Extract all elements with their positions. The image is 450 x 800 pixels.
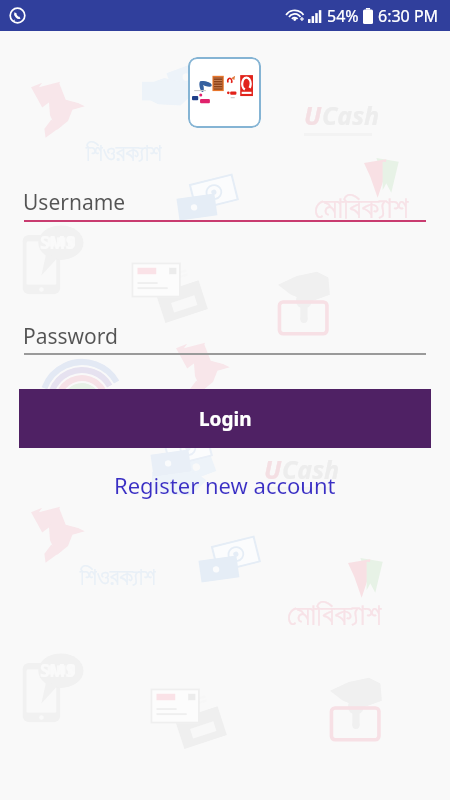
- staticText: SMS: [40, 231, 75, 254]
- staticText: Login: [199, 406, 252, 432]
- staticText: মোবিক্যাশ: [287, 600, 382, 631]
- staticText: Cash: [282, 452, 340, 486]
- button[interactable]: Username: [24, 182, 426, 222]
- staticText: 6:30 PM: [378, 5, 439, 27]
- staticText: মোবিক্যাশ: [314, 193, 409, 224]
- staticText: U: [304, 98, 322, 132]
- staticText: Register new account: [114, 470, 336, 500]
- staticText: U: [264, 452, 282, 486]
- button[interactable]: Login: [19, 389, 431, 448]
- staticText: শিওরক্যাশ: [80, 566, 156, 590]
- button[interactable]: Password: [24, 316, 426, 355]
- other: WhatsApp: [9, 7, 26, 24]
- staticText: Cash: [322, 98, 380, 132]
- staticText: Password: [23, 322, 118, 351]
- button[interactable]: Register new account: [104, 466, 346, 504]
- staticText: Username: [23, 188, 126, 217]
- staticText: শিওরক্যাশ: [86, 142, 162, 166]
- staticText: 54%: [327, 5, 359, 27]
- staticText: SMS: [40, 659, 75, 682]
